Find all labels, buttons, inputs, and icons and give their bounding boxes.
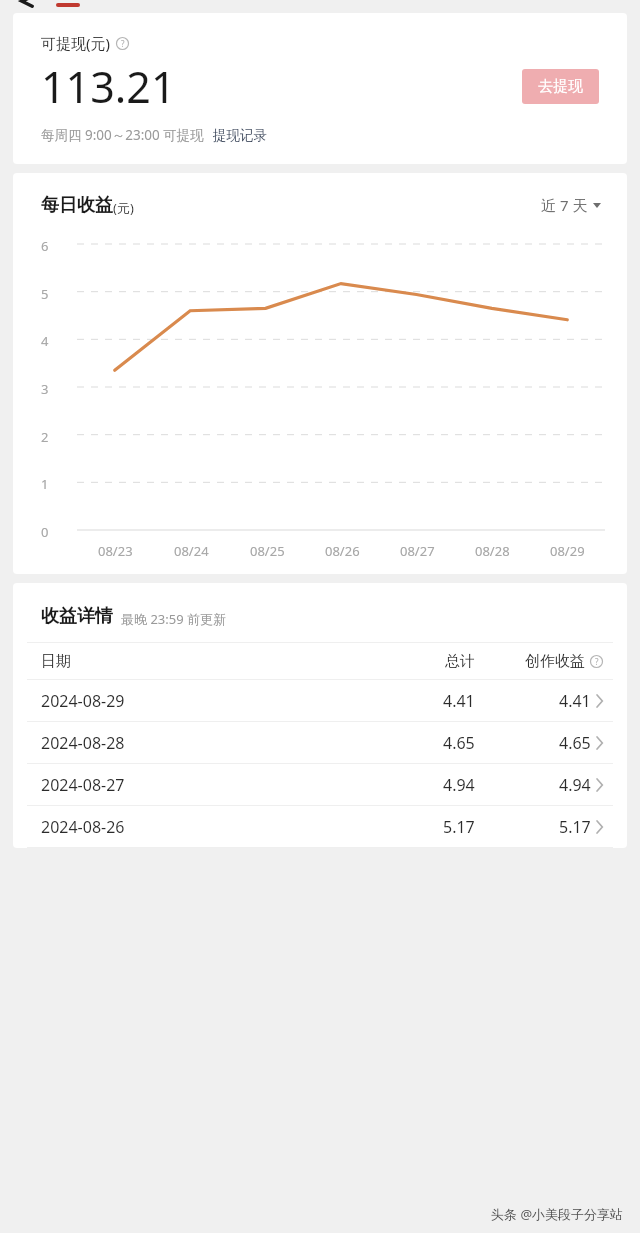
button[interactable]: Back (14, 0, 40, 7)
staticText: 08/26 (325, 542, 360, 560)
staticText: 113.21 (41, 57, 176, 116)
button[interactable]: 2024-08-28 (13, 722, 627, 763)
button[interactable]: 提现记录 (213, 127, 267, 144)
staticText: 1 (41, 475, 49, 489)
staticText: 提现记录 (213, 127, 267, 144)
staticText: 0 (41, 523, 49, 537)
staticText: 5.17 (443, 816, 475, 838)
staticText: 08/23 (98, 542, 133, 560)
staticText: 日期 (41, 652, 71, 671)
staticText: 创作收益 (525, 652, 585, 671)
staticText: ? (595, 656, 599, 667)
staticText: 08/27 (400, 542, 435, 560)
staticText: 08/28 (475, 542, 510, 560)
staticText: 08/29 (550, 542, 585, 560)
button[interactable]: 2024-08-29 (13, 680, 627, 721)
staticText: 4.65 (559, 732, 591, 754)
button[interactable]: 去提现 (522, 69, 599, 104)
staticText: 2 (41, 428, 49, 442)
staticText: ? (121, 38, 125, 49)
staticText: 4.94 (559, 774, 591, 796)
staticText: 2024-08-26 (41, 816, 125, 838)
staticText: 5 (41, 285, 49, 299)
staticText: 4.94 (443, 774, 475, 796)
staticText: 4.41 (559, 690, 591, 712)
staticText: 近 7 天 (541, 195, 588, 215)
staticText: 每日收益 (41, 194, 113, 217)
staticText: 头条 @小美段子分享站 (491, 1205, 624, 1223)
staticText: 去提现 (538, 77, 583, 96)
staticText: 2024-08-27 (41, 774, 125, 796)
staticText: 2024-08-29 (41, 690, 125, 712)
staticText: 4.65 (443, 732, 475, 754)
staticText: 5.17 (559, 816, 591, 838)
staticText: 08/25 (250, 542, 285, 560)
staticText: 2024-08-28 (41, 732, 125, 754)
staticText: 08/24 (174, 542, 209, 560)
staticText: 4.41 (443, 690, 475, 712)
staticText: 4 (41, 332, 49, 346)
staticText: 可提现(元) (41, 33, 111, 53)
button[interactable]: 2024-08-27 (13, 764, 627, 805)
staticText: (元) (113, 199, 134, 217)
staticText: 总计 (445, 652, 475, 671)
staticText: 3 (41, 380, 49, 394)
staticText: 收益详情 (41, 605, 113, 628)
staticText: 6 (41, 237, 49, 251)
staticText: 最晚 23:59 前更新 (121, 610, 226, 628)
button[interactable]: 近 7 天 (537, 191, 605, 219)
button[interactable]: 2024-08-26 (13, 806, 627, 847)
staticText: 每周四 9:00～23:00 可提现 (41, 126, 204, 144)
